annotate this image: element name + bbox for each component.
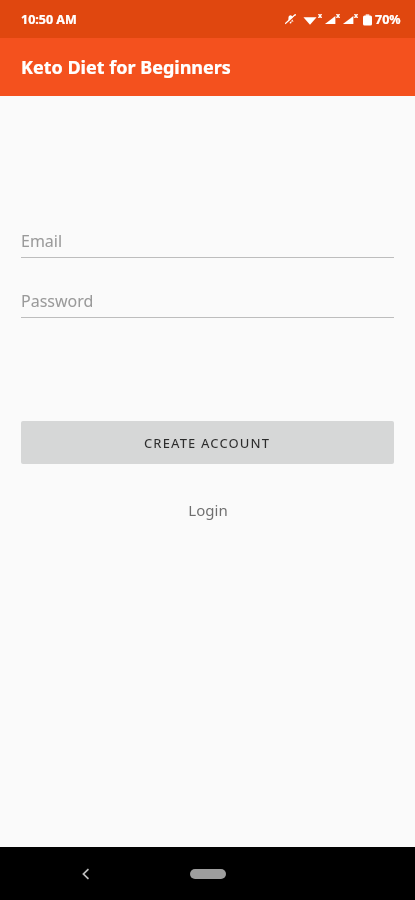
staticText: Keto Diet for Beginners [21, 55, 231, 80]
staticText: Email [21, 230, 63, 252]
staticText: x [318, 11, 323, 21]
button[interactable]: Home [178, 859, 238, 889]
button[interactable]: Email [21, 225, 394, 258]
staticText: Login [188, 500, 228, 520]
button[interactable]: Login [0, 493, 415, 527]
staticText: x [354, 11, 359, 21]
button[interactable]: CREATE ACCOUNT [21, 421, 394, 464]
staticText: 10:50 AM [21, 11, 77, 28]
staticText: Password [21, 290, 94, 312]
button[interactable]: Password [21, 285, 394, 318]
staticText: 70% [375, 11, 401, 28]
staticText: x [336, 11, 341, 21]
button[interactable]: Back [64, 852, 108, 896]
staticText: CREATE ACCOUNT [144, 434, 271, 452]
